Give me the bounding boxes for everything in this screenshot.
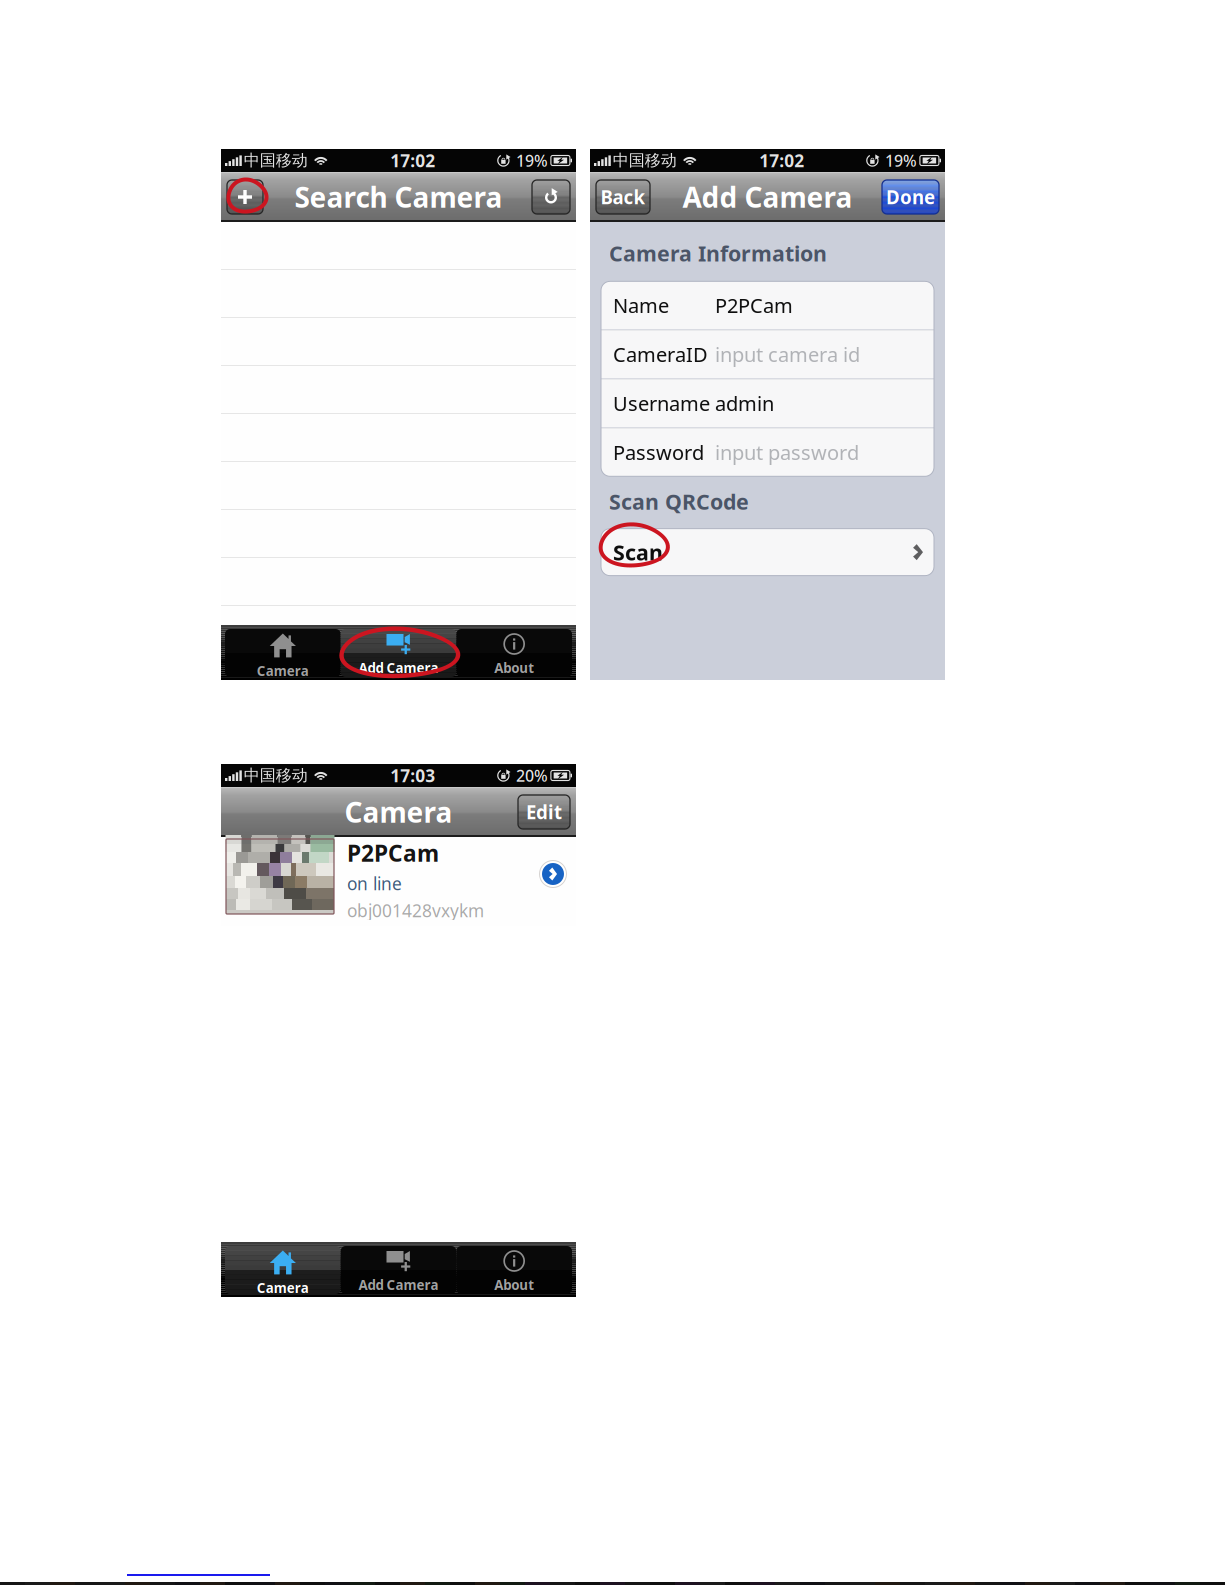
button[interactable]: Add Camera bbox=[341, 1246, 456, 1294]
staticText: Search Camera bbox=[294, 178, 502, 216]
staticText: About bbox=[494, 659, 534, 677]
staticText: Name bbox=[613, 292, 669, 319]
staticText: Add Camera bbox=[358, 659, 438, 677]
staticText: input camera id bbox=[715, 341, 860, 368]
staticText: About bbox=[494, 1276, 534, 1294]
staticText: Back bbox=[600, 185, 645, 209]
staticText: Scan QRCode bbox=[609, 487, 749, 516]
staticText: 19% bbox=[516, 150, 548, 171]
staticText: Username bbox=[613, 390, 710, 417]
button[interactable] bbox=[227, 180, 263, 214]
staticText: Camera bbox=[344, 793, 452, 831]
staticText: P2PCam bbox=[715, 292, 793, 319]
staticText: Camera Information bbox=[609, 239, 827, 267]
staticText: 17:03 bbox=[390, 764, 435, 787]
staticText: Edit bbox=[526, 800, 562, 824]
staticText: 中国移动 bbox=[244, 151, 308, 170]
button[interactable]: Scan bbox=[590, 529, 945, 576]
button[interactable]: Camera bbox=[225, 629, 341, 677]
button[interactable]: About bbox=[456, 1246, 572, 1294]
staticText: 20% bbox=[516, 765, 548, 786]
staticText: obj001428vxykm bbox=[347, 899, 484, 922]
button[interactable]: Back bbox=[596, 180, 650, 214]
button[interactable] bbox=[532, 180, 570, 214]
staticText: 19% bbox=[885, 150, 917, 171]
staticText: 17:02 bbox=[390, 149, 435, 172]
staticText: 中国移动 bbox=[244, 766, 308, 785]
staticText: on line bbox=[347, 872, 402, 895]
staticText: Camera bbox=[257, 662, 309, 680]
staticText: Camera bbox=[257, 1279, 309, 1297]
staticText: CameraID bbox=[613, 341, 708, 368]
staticText: Add Camera bbox=[682, 178, 852, 216]
staticText: Password bbox=[613, 439, 704, 466]
staticText: input password bbox=[715, 439, 859, 466]
staticText: admin bbox=[715, 390, 774, 417]
staticText: 中国移动 bbox=[613, 151, 677, 170]
button[interactable]: P2PCam bbox=[221, 837, 576, 920]
staticText: 17:02 bbox=[759, 149, 804, 172]
button[interactable]: Add Camera bbox=[341, 629, 456, 677]
button[interactable]: Done bbox=[882, 180, 939, 214]
staticText: Done bbox=[886, 185, 935, 209]
staticText: Add Camera bbox=[358, 1276, 438, 1294]
staticText: P2PCam bbox=[347, 838, 439, 868]
staticText: Scan bbox=[613, 538, 663, 566]
button[interactable]: Edit bbox=[518, 795, 570, 829]
button[interactable]: About bbox=[456, 629, 572, 677]
button[interactable]: Camera bbox=[225, 1246, 341, 1294]
